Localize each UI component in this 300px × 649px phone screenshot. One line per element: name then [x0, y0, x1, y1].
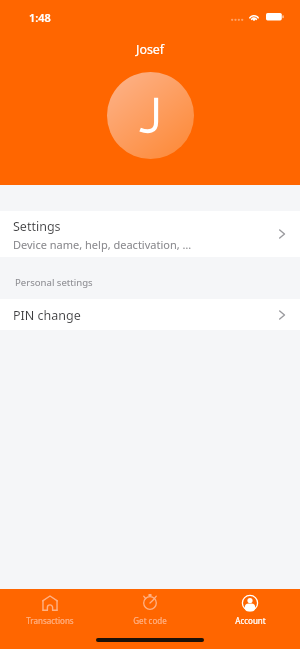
staticText: Get code: [133, 615, 167, 626]
staticText: PIN change: [13, 307, 81, 324]
button[interactable]: Transactions: [0, 589, 100, 631]
staticText: Account: [235, 615, 266, 626]
staticText: Personal settings: [15, 276, 93, 289]
staticText: Transactions: [26, 615, 74, 626]
button[interactable]: PIN change: [0, 299, 300, 330]
staticText: Device name, help, deactivation, …: [13, 237, 192, 252]
staticText: Settings: [13, 218, 61, 235]
staticText: 1:48: [29, 10, 51, 25]
button[interactable]: Get code: [100, 589, 200, 631]
staticText: Josef: [136, 41, 165, 58]
button[interactable]: Settings: [0, 211, 300, 257]
button[interactable]: Account: [200, 589, 300, 631]
